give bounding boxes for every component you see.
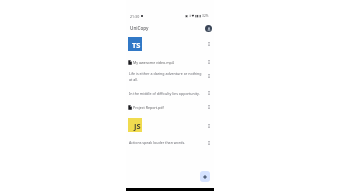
- button[interactable]: More options: [204, 121, 214, 131]
- staticText: My awesome video.mp4: [133, 60, 174, 65]
- button[interactable]: My awesome video.mp4: [126, 56, 214, 68]
- button[interactable]: More options: [204, 138, 214, 148]
- button[interactable]: Add item: [200, 171, 210, 182]
- button[interactable]: Actions speak louder than words.: [126, 135, 214, 149]
- staticText: TS: [132, 40, 141, 50]
- staticText: UniCopy: [130, 25, 149, 31]
- button[interactable]: More options: [204, 57, 214, 67]
- button[interactable]: More options: [204, 102, 214, 112]
- staticText: Life is either a daring adventure or not…: [129, 71, 203, 82]
- button[interactable]: More options: [204, 88, 214, 98]
- staticText: In the middle of difficulty lies opportu…: [129, 91, 203, 96]
- button[interactable]: JS: [126, 116, 214, 134]
- button[interactable]: More options: [204, 71, 214, 81]
- button[interactable]: Project Report.pdf: [126, 101, 214, 113]
- staticText: 21:30: [130, 14, 140, 19]
- button[interactable]: Life is either a daring adventure or not…: [126, 69, 214, 83]
- button[interactable]: TS: [126, 35, 214, 53]
- button[interactable]: In the middle of difficulty lies opportu…: [126, 86, 214, 100]
- button[interactable]: Account: [205, 25, 212, 32]
- button[interactable]: More options: [204, 39, 214, 49]
- staticText: Actions speak louder than words.: [129, 140, 203, 145]
- staticText: Project Report.pdf: [133, 105, 164, 110]
- staticText: ▣ ↕♥ ▮▮ ▮ 32%: [185, 14, 209, 18]
- staticText: JS: [134, 121, 141, 131]
